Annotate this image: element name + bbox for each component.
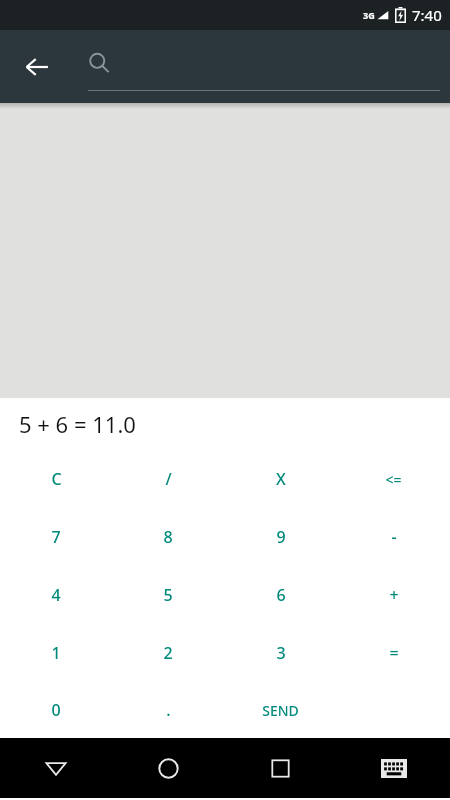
- button[interactable]: +: [337, 566, 450, 624]
- staticText: +: [389, 584, 399, 606]
- staticText: -: [391, 526, 397, 548]
- staticText: C: [51, 468, 62, 490]
- button[interactable]: X: [224, 450, 337, 508]
- button[interactable]: 8: [112, 508, 224, 566]
- button[interactable]: 4: [0, 566, 112, 624]
- staticText: 6: [276, 584, 286, 606]
- staticText: X: [276, 468, 286, 490]
- button[interactable]: Recent apps: [224, 738, 337, 798]
- staticText: 3: [276, 642, 286, 664]
- button[interactable]: 2: [112, 624, 224, 682]
- staticText: .: [166, 699, 171, 721]
- button[interactable]: /: [112, 450, 224, 508]
- button[interactable]: .: [112, 682, 224, 738]
- staticText: /: [165, 468, 172, 490]
- button[interactable]: [88, 30, 440, 103]
- staticText: 1: [51, 642, 61, 664]
- staticText: =: [389, 642, 399, 664]
- staticText: 8: [163, 526, 173, 548]
- staticText: 7: [51, 526, 61, 548]
- button[interactable]: Home: [112, 738, 224, 798]
- button[interactable]: 7: [0, 508, 112, 566]
- button[interactable]: SEND: [224, 682, 337, 738]
- button[interactable]: Back: [13, 43, 61, 91]
- staticText: 0: [51, 699, 61, 721]
- button[interactable]: 0: [0, 682, 112, 738]
- button[interactable]: Back: [0, 738, 112, 798]
- staticText: <=: [385, 470, 402, 489]
- button[interactable]: <=: [337, 450, 450, 508]
- staticText: 9: [276, 526, 286, 548]
- button[interactable]: 1: [0, 624, 112, 682]
- staticText: 5 + 6 = 11.0: [19, 409, 136, 439]
- staticText: 2: [163, 642, 173, 664]
- button[interactable]: Keyboard: [337, 738, 450, 798]
- button[interactable]: =: [337, 624, 450, 682]
- staticText: 3G: [363, 9, 375, 21]
- staticText: 5: [163, 584, 173, 606]
- button[interactable]: 5: [112, 566, 224, 624]
- button[interactable]: 9: [224, 508, 337, 566]
- staticText: SEND: [262, 701, 299, 720]
- button[interactable]: C: [0, 450, 112, 508]
- button[interactable]: -: [337, 508, 450, 566]
- button[interactable]: 6: [224, 566, 337, 624]
- button[interactable]: 3: [224, 624, 337, 682]
- staticText: 4: [51, 584, 61, 606]
- staticText: 7:40: [412, 5, 442, 25]
